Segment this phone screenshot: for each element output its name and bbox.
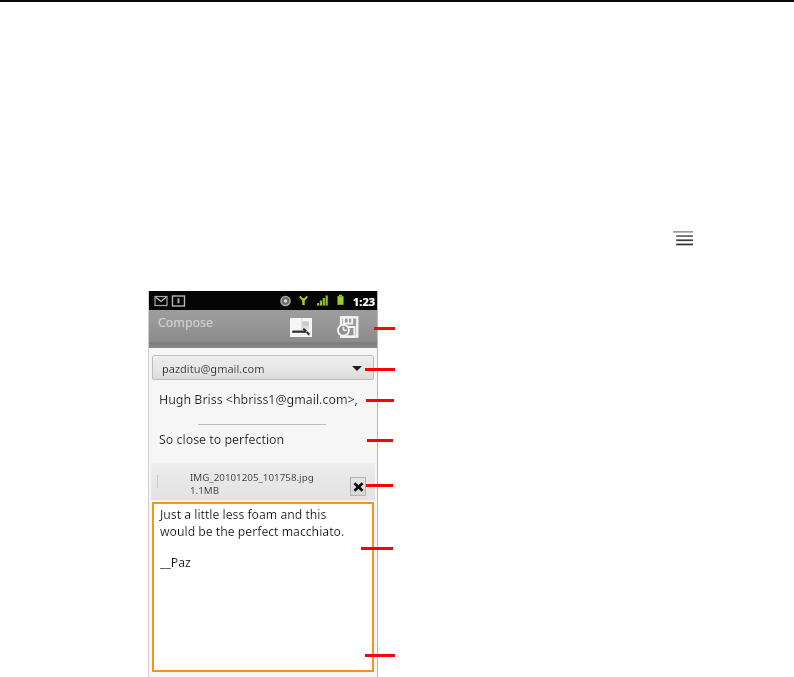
button[interactable]: Hugh Briss <hbriss1@gmail.com>, (148, 381, 378, 411)
staticText: So close to perfection (159, 431, 285, 448)
staticText: Compose (158, 314, 213, 331)
button[interactable]: Remove attachment (350, 477, 366, 496)
button[interactable]: So close to perfection (148, 421, 378, 451)
staticText: pazditu@gmail.com (162, 361, 265, 376)
staticText: 1:23 (353, 294, 375, 309)
staticText: Just a little less foam and this (160, 506, 327, 523)
button[interactable]: Send (280, 311, 322, 343)
button[interactable]: Save draft (327, 311, 369, 343)
staticText: would be the perfect macchiato. (160, 523, 345, 540)
staticText: __Paz (160, 554, 191, 571)
staticText: Hugh Briss <hbriss1@gmail.com>, (159, 391, 358, 408)
staticText: 1.1MB (190, 484, 220, 497)
staticText: IMG_20101205_101758.jpg (190, 471, 314, 484)
button[interactable]: pazditu@gmail.com (152, 355, 374, 380)
